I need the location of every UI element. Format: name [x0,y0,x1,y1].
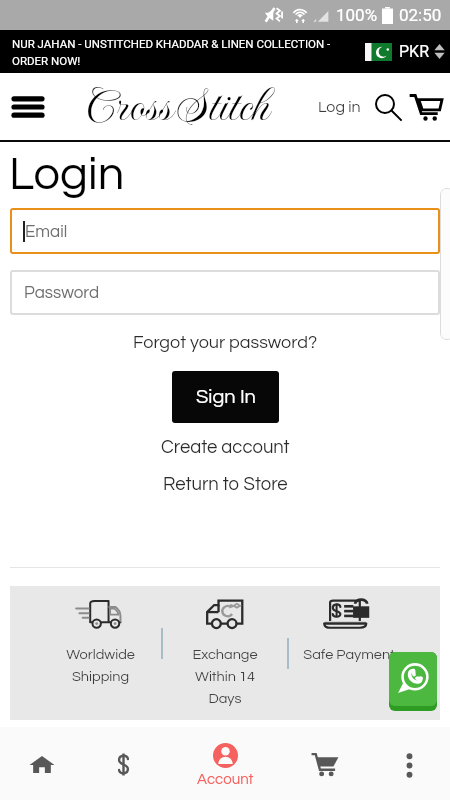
staticText: Password [24,284,100,302]
button[interactable]: Log in [315,91,364,123]
button[interactable]: Cart [407,89,443,125]
button[interactable]: Cart [285,727,365,800]
button[interactable]: More options [369,727,449,800]
staticText: 02:50 [399,5,442,25]
staticText: 100% [336,5,378,25]
staticText: Cross Stitch [86,76,268,137]
staticText: Return to Store [163,475,288,494]
button[interactable]: Return to Store [0,475,450,494]
button[interactable]: Currency [83,727,163,800]
button[interactable]: Select currency PKR [365,42,445,61]
staticText: NUR JAHAN - UNSTITCHED KHADDAR & LINEN C… [12,37,331,50]
button[interactable]: Create account [0,438,450,457]
staticText: ORDER NOW! [12,54,81,67]
button[interactable]: Account [170,727,280,800]
button[interactable]: Open menu [4,83,52,131]
staticText: Login [9,150,125,198]
button[interactable]: Home [2,727,82,800]
button[interactable]: Sign In [172,371,279,423]
staticText: Log in [318,99,361,115]
button[interactable]: Search [371,90,405,124]
staticText: Forgot your password? [133,333,318,352]
button[interactable]: Email [10,208,440,254]
button[interactable]: Chat on WhatsApp [389,652,437,706]
staticText: Create account [161,438,290,457]
staticText: Exchange Within 14 Days [192,647,258,706]
staticText: Sign In [196,387,256,408]
button[interactable]: Forgot your password? [0,333,450,352]
button[interactable]: Safe Payment [289,586,409,720]
button[interactable]: Worldwide Shipping [40,586,160,720]
staticText: Email [25,223,68,241]
button[interactable]: Password [10,270,440,315]
staticText: Safe Payment [303,647,395,662]
staticText: Worldwide Shipping [66,647,135,684]
staticText: PKR [399,42,429,61]
button[interactable]: Exchange Within 14 Days [165,586,285,720]
staticText: Account [197,772,254,787]
